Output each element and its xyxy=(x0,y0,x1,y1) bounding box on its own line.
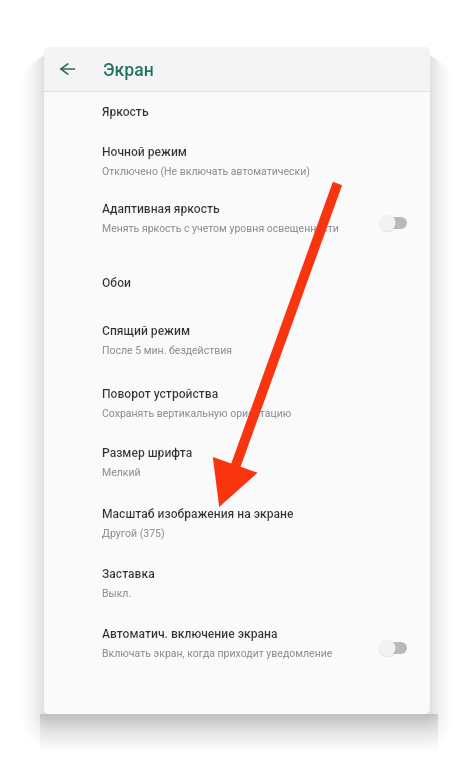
staticText: Адаптивная яркость xyxy=(102,202,220,216)
button[interactable]: Заставка xyxy=(44,559,430,605)
staticText: Автоматич. включение экрана xyxy=(102,627,278,641)
staticText: Другой (375) xyxy=(102,527,165,539)
button[interactable]: Адаптивная яркость xyxy=(44,194,430,240)
staticText: Размер шрифта xyxy=(102,446,193,460)
staticText: Заставка xyxy=(102,567,155,581)
staticText: Сохранять вертикальную ориентацию xyxy=(102,407,292,419)
staticText: Экран xyxy=(103,60,154,81)
staticText: Яркость xyxy=(102,105,149,119)
staticText: Поворот устройства xyxy=(102,387,219,401)
button[interactable]: Яркость xyxy=(44,97,430,127)
button[interactable]: Обои xyxy=(44,268,430,298)
staticText: Отключено (Не включать автоматически) xyxy=(102,165,310,177)
button[interactable]: Масштаб изображения на экране xyxy=(44,499,430,545)
button[interactable]: Поворот устройства xyxy=(44,379,430,425)
button[interactable]: Ночной режим xyxy=(44,137,430,183)
button[interactable]: Toggle xyxy=(379,212,413,234)
staticText: Ночной режим xyxy=(102,145,187,159)
staticText: Менять яркость с учетом уровня освещенно… xyxy=(102,222,339,234)
button[interactable]: Спящий режим xyxy=(44,316,430,362)
staticText: После 5 мин. бездействия xyxy=(102,344,233,356)
button[interactable]: Размер шрифта xyxy=(44,438,430,484)
button[interactable]: Back xyxy=(51,53,83,85)
staticText: Мелкий xyxy=(102,466,141,478)
button[interactable]: Автоматич. включение экрана xyxy=(44,619,430,665)
staticText: Спящий режим xyxy=(102,324,190,338)
staticText: Обои xyxy=(102,276,131,290)
staticText: Выкл. xyxy=(102,587,132,599)
staticText: Включать экран, когда приходит уведомлен… xyxy=(102,647,333,659)
button[interactable]: Toggle xyxy=(379,637,413,659)
staticText: Масштаб изображения на экране xyxy=(102,507,294,521)
